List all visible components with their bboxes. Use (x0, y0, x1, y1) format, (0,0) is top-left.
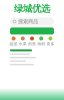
button[interactable]: 更多 (46, 36, 55, 46)
staticText: 肉类 (28, 41, 36, 46)
button[interactable]: 海鲜 (37, 36, 46, 46)
staticText: 水果 (19, 41, 27, 46)
button[interactable]: 肉类 (27, 36, 37, 46)
button[interactable]: 蔬菜 (9, 36, 18, 46)
staticText: 搜索商品 (18, 18, 38, 25)
staticText: 更多 (46, 41, 54, 46)
staticText: 绿城优选 (14, 3, 50, 14)
button[interactable]: 搜索商品 (10, 17, 54, 25)
button[interactable]: 水果 (18, 36, 27, 46)
staticText: 蔬菜 (10, 41, 18, 46)
staticText: 海鲜 (37, 41, 45, 46)
